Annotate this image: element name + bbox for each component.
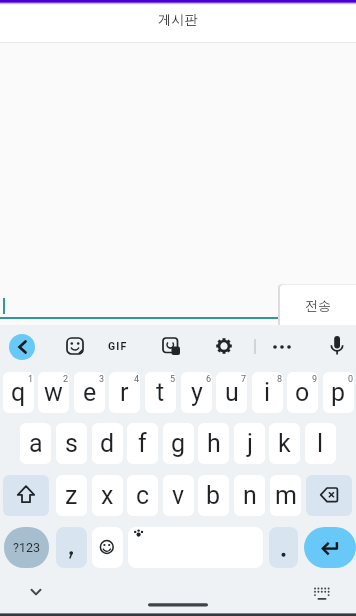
staticText: w [44,378,63,407]
button[interactable]: 전송 [280,285,356,325]
button[interactable]: x [92,475,123,516]
button[interactable]: m [270,475,301,516]
staticText: 5 [170,374,176,385]
button[interactable]: v [163,475,194,516]
staticText: GIF [108,340,128,352]
button[interactable]: n [234,475,265,516]
staticText: j [247,429,253,458]
button[interactable]: j [234,423,265,464]
staticText: 전송 [305,297,331,313]
button[interactable] [92,527,123,568]
button[interactable] [159,334,183,358]
button[interactable] [24,582,48,602]
staticText: v [172,481,185,510]
staticText: e [83,378,97,407]
button[interactable] [212,334,236,358]
staticText: m [275,481,297,510]
button[interactable]: a [20,423,51,464]
staticText: h [207,429,221,458]
button[interactable] [3,475,49,516]
button[interactable]: ?123 [4,527,49,568]
staticText: r [120,378,129,407]
button[interactable]: f [127,423,158,464]
staticText: x [101,481,114,510]
staticText: q [11,378,26,407]
button[interactable] [63,334,87,358]
staticText: s [65,429,78,458]
button[interactable]: u [216,372,247,413]
button[interactable]: d [92,423,123,464]
button[interactable]: e [74,372,105,413]
button[interactable] [270,337,294,357]
button[interactable]: t [145,372,176,413]
button[interactable] [269,527,298,568]
staticText: 9 [312,374,318,385]
staticText: 6 [206,374,212,385]
button[interactable]: k [269,423,300,464]
button[interactable]: p [323,372,354,413]
staticText: b [206,481,221,510]
button[interactable] [128,527,263,568]
button[interactable]: i [252,372,283,413]
staticText: z [65,481,78,510]
staticText: c [136,481,150,510]
staticText: t [156,378,165,407]
button[interactable]: l [305,423,336,464]
button[interactable] [310,584,334,604]
button[interactable]: c [127,475,158,516]
button[interactable]: 게시판 [0,6,356,33]
button[interactable]: o [287,372,318,413]
staticText: d [100,429,115,458]
button[interactable]: s [56,423,87,464]
button[interactable] [0,285,280,320]
button[interactable]: w [38,372,69,413]
staticText: f [138,429,147,458]
button[interactable]: g [163,423,194,464]
button[interactable]: z [56,475,87,516]
staticText: a [29,429,43,458]
button[interactable]: q [3,372,34,413]
staticText: p [331,378,346,407]
staticText: ?123 [13,540,40,555]
staticText: i [264,378,271,407]
button[interactable] [9,334,35,360]
button[interactable]: y [181,372,212,413]
staticText: 4 [134,374,140,385]
button[interactable] [306,475,352,516]
staticText: l [317,429,324,458]
button[interactable] [325,334,349,358]
staticText: 게시판 [158,11,198,28]
staticText: k [278,429,291,458]
staticText: 8 [277,374,283,385]
button[interactable] [304,527,356,568]
staticText: u [225,378,239,407]
button[interactable]: r [109,372,140,413]
button[interactable]: h [198,423,229,464]
staticText: 1 [28,374,34,385]
staticText: o [295,378,310,407]
staticText: n [243,481,257,510]
staticText: 7 [241,374,247,385]
staticText: 0 [348,374,354,385]
staticText: 2 [63,374,69,385]
staticText: y [191,378,203,407]
staticText: g [171,429,186,458]
button[interactable]: GIF [104,336,132,355]
button[interactable]: b [198,475,229,516]
staticText: 3 [99,374,105,385]
button[interactable] [56,527,87,568]
